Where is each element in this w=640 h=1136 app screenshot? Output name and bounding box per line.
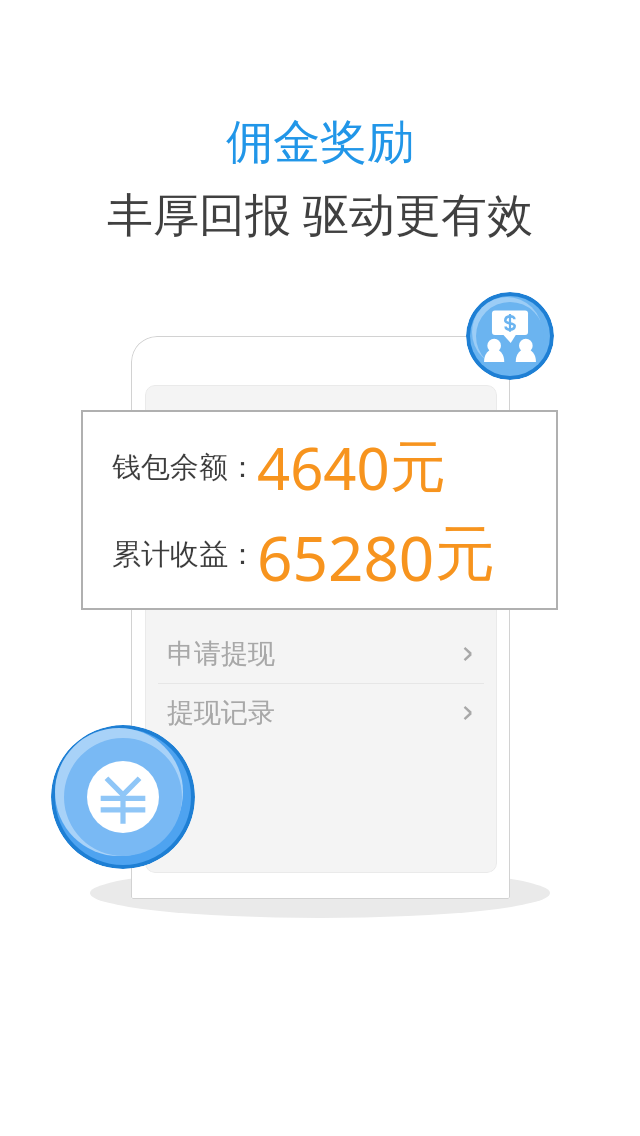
staticText: 4640 <box>257 428 390 506</box>
staticText: 65280 <box>257 515 435 593</box>
button[interactable]: 提现记录 <box>145 684 497 742</box>
button[interactable]: 申请提现 <box>145 625 497 683</box>
button[interactable]: Wallet <box>51 725 195 869</box>
staticText: 元 <box>390 432 446 503</box>
staticText: 申请提现 <box>167 637 275 671</box>
staticText: 元 <box>435 516 495 592</box>
staticText: 钱包余额： <box>112 449 257 486</box>
staticText: 累计收益： <box>112 536 257 573</box>
staticText: 佣金奖励 <box>0 113 640 172</box>
staticText: 提现记录 <box>167 696 275 730</box>
staticText: 丰厚回报 驱动更有效 <box>0 182 640 245</box>
button[interactable]: Commission info <box>466 292 554 380</box>
